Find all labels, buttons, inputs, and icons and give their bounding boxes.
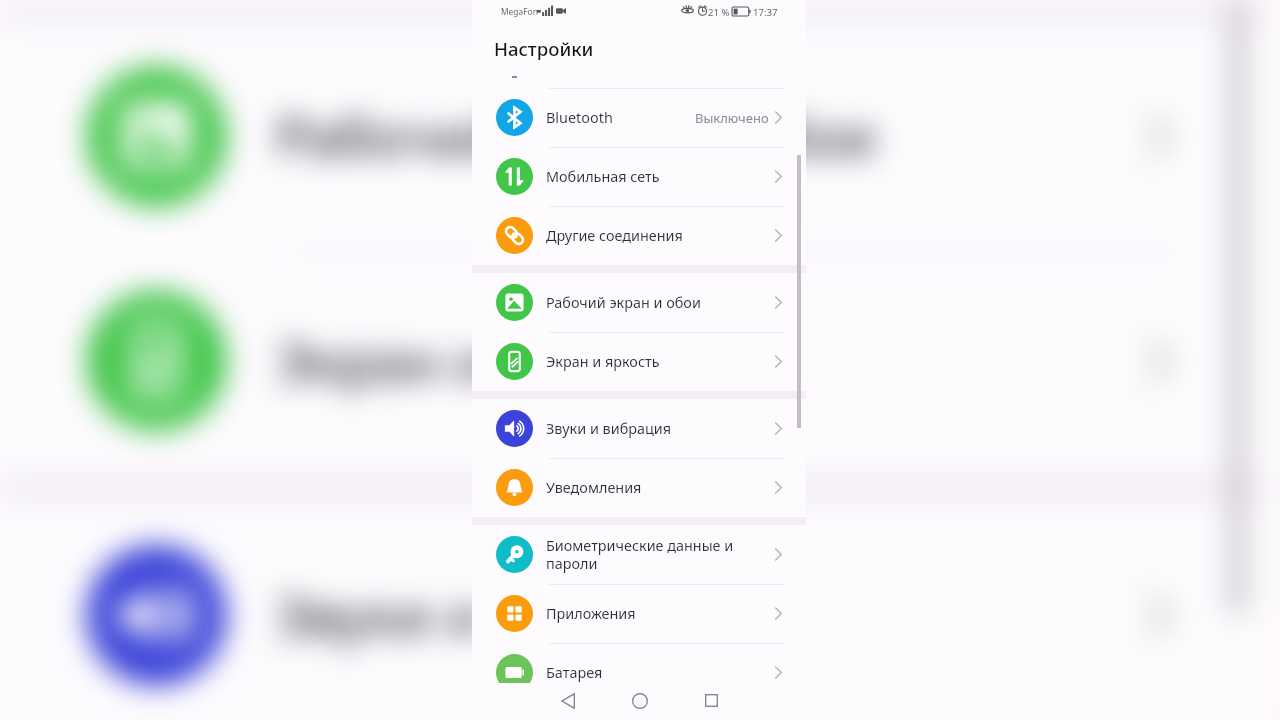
button[interactable]: Экран и яркость <box>472 332 806 391</box>
button[interactable]: Recents <box>689 682 733 719</box>
staticText: Bluetooth <box>546 108 695 128</box>
staticText: Батарея <box>546 663 775 683</box>
staticText: Приложения <box>546 604 775 624</box>
staticText: Звуки и вибрация <box>546 419 775 439</box>
staticText: Биометрические данные и пароли <box>546 536 775 573</box>
button[interactable]: Приложения <box>472 584 806 643</box>
button[interactable]: Мобильная сеть <box>472 147 806 206</box>
staticText: Другие соединения <box>546 226 775 246</box>
button[interactable]: Уведомления <box>472 458 806 517</box>
staticText: Экран и яркость <box>546 352 775 372</box>
button[interactable]: Другие соединения <box>472 206 806 265</box>
button[interactable]: Рабочий экран и обои <box>472 273 806 332</box>
staticText: Звуки и вибрация <box>276 579 1146 655</box>
staticText: MegaFon <box>501 6 538 17</box>
button[interactable]: Звуки и вибрация <box>472 399 806 458</box>
staticText: Выключено <box>695 109 769 127</box>
button[interactable]: Батарея <box>472 643 806 702</box>
button[interactable]: Биометрические данные и пароли <box>472 525 806 584</box>
staticText: 17:37 <box>753 6 778 19</box>
button[interactable]: Home <box>618 682 662 719</box>
staticText: Рабочий экран и обои <box>276 100 1146 176</box>
staticText: Уведомления <box>546 478 775 498</box>
staticText: Экран и яркость <box>276 325 1146 401</box>
staticText: Мобильная сеть <box>546 167 775 187</box>
staticText: Рабочий экран и обои <box>546 293 775 313</box>
button[interactable]: Back <box>546 682 590 719</box>
staticText: Настройки <box>494 36 594 61</box>
button[interactable]: Bluetooth <box>472 88 806 147</box>
staticText: 21 % <box>708 6 730 19</box>
